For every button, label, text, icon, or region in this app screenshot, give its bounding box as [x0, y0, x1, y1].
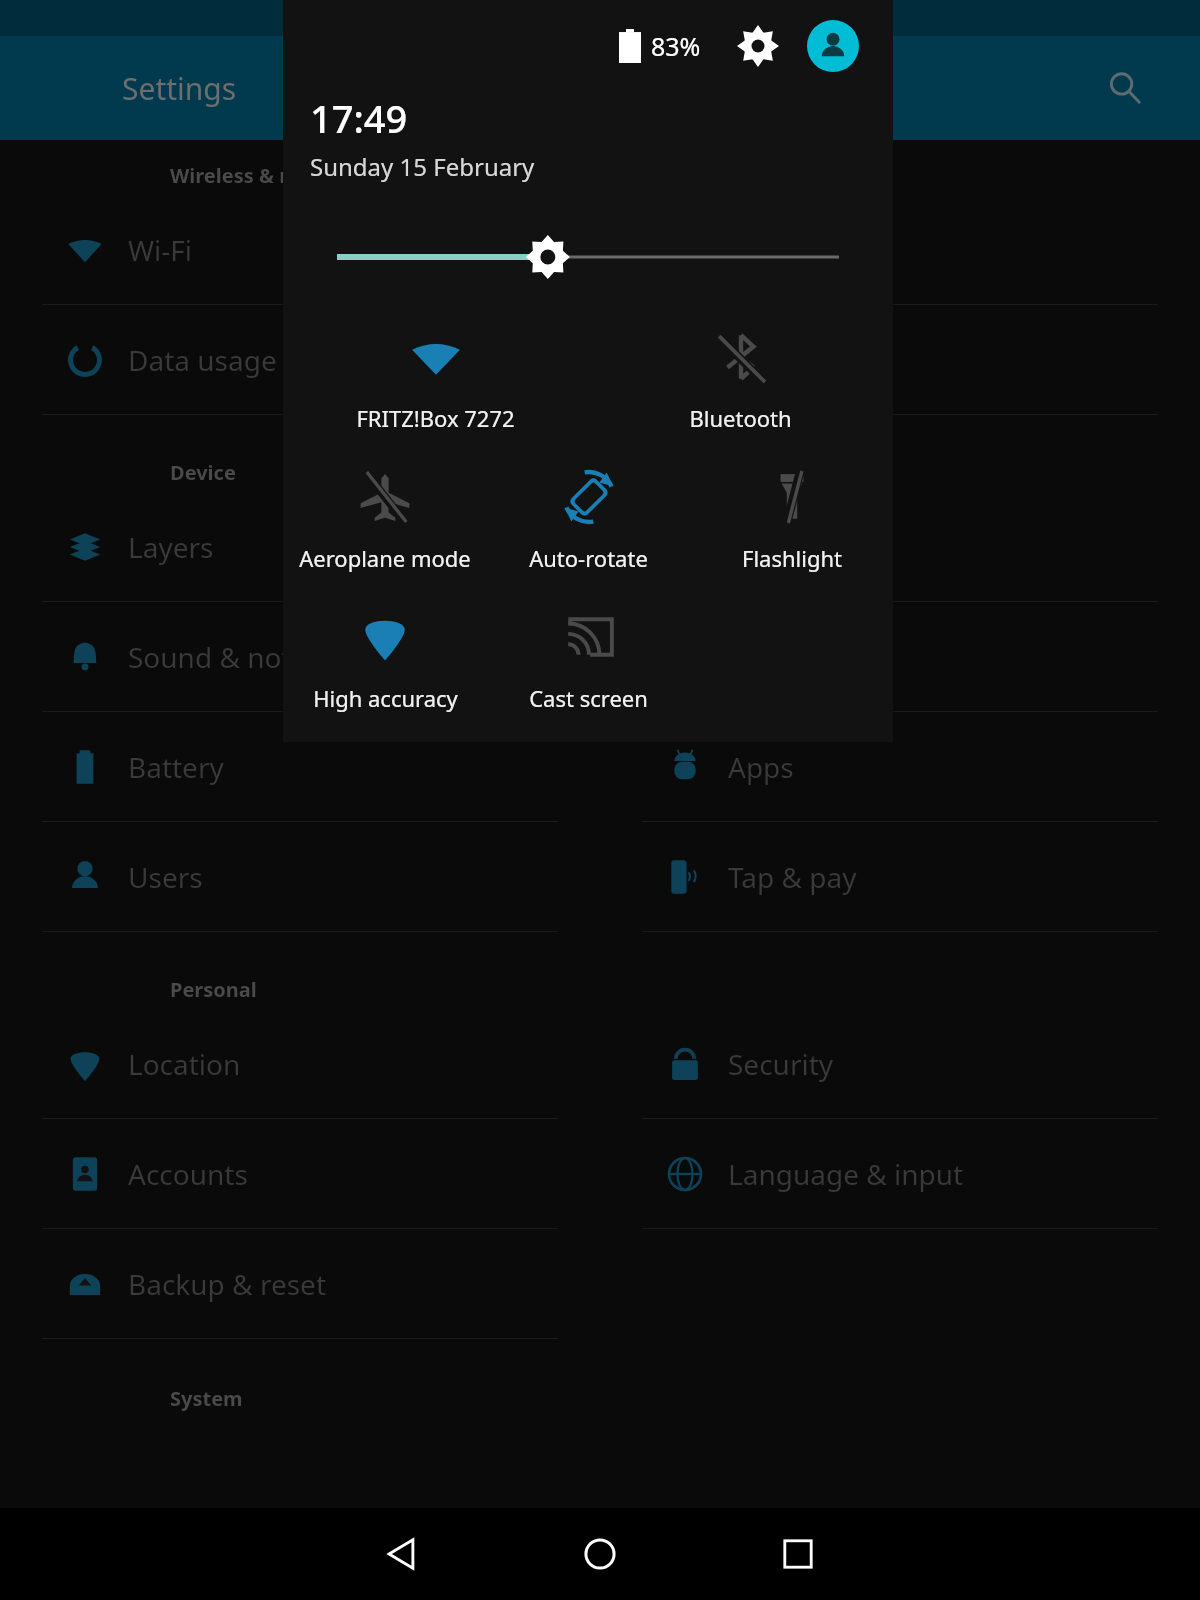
staticText: Display [728, 528, 824, 566]
staticText: 17:49 [310, 92, 408, 144]
button[interactable]: Flashlight [690, 449, 893, 589]
button[interactable]: Tap & pay [642, 822, 1158, 932]
button[interactable]: Battery [42, 712, 558, 822]
staticText: Language & input [728, 1155, 964, 1193]
button[interactable]: Display [642, 492, 1158, 602]
button[interactable]: Bluetooth [588, 309, 893, 449]
staticText: System [170, 1385, 243, 1412]
staticText: Security [728, 1045, 834, 1083]
button[interactable]: Auto-rotate [487, 449, 690, 589]
staticText: More [728, 341, 798, 379]
button[interactable]: Cast screen [487, 589, 690, 729]
button[interactable]: Aeroplane mode [283, 449, 487, 589]
staticText: Layers [128, 528, 214, 566]
staticText: Wi-Fi [128, 231, 193, 269]
button[interactable]: Brightness [283, 229, 893, 285]
staticText: 83% [651, 29, 701, 63]
staticText: Battery [128, 748, 224, 786]
staticText: Device [170, 459, 236, 486]
staticText: Location [128, 1045, 241, 1083]
button[interactable]: Sound & notification [42, 602, 558, 712]
staticText: Flashlight [742, 543, 842, 573]
button[interactable]: Search [1096, 59, 1154, 117]
button[interactable]: Data usage [42, 305, 558, 415]
button[interactable]: Security [642, 1009, 1158, 1119]
staticText: FRITZ!Box 7272 [356, 403, 515, 433]
button[interactable]: High accuracy [283, 589, 487, 729]
staticText: Sound & notification [128, 638, 397, 676]
button[interactable]: Language & input [642, 1119, 1158, 1229]
button[interactable]: Settings [731, 19, 785, 73]
button[interactable]: Home [545, 1508, 655, 1600]
button[interactable]: Backup & reset [42, 1229, 558, 1339]
button[interactable]: More [642, 305, 1158, 415]
button[interactable]: Back [347, 1508, 457, 1600]
staticText: Personal [170, 976, 257, 1003]
button[interactable]: Location [42, 1009, 558, 1119]
staticText: Settings [122, 68, 237, 109]
staticText: Auto-rotate [529, 543, 648, 573]
button[interactable]: Recent apps [743, 1508, 853, 1600]
staticText: Backup & reset [128, 1265, 326, 1303]
staticText: Cast screen [529, 683, 648, 713]
staticText: Wireless & networks [170, 162, 374, 189]
staticText: Sunday 15 February [310, 150, 535, 183]
button[interactable]: Layers [42, 492, 558, 602]
button[interactable]: Accounts [42, 1119, 558, 1229]
button[interactable]: User profile [807, 20, 859, 72]
button[interactable]: Users [42, 822, 558, 932]
staticText: Accounts [128, 1155, 248, 1193]
staticText: Bluetooth [689, 403, 792, 433]
button[interactable]: Bluetooth [642, 195, 1158, 305]
button[interactable]: Storage [642, 602, 1158, 712]
staticText: Bluetooth [728, 231, 858, 269]
button[interactable]: Apps [642, 712, 1158, 822]
button[interactable]: FRITZ!Box 7272 [283, 309, 588, 449]
staticText: Data usage [128, 341, 277, 379]
staticText: High accuracy [313, 683, 458, 713]
staticText: Tap & pay [728, 858, 857, 896]
staticText: Apps [728, 748, 794, 786]
staticText: Aeroplane mode [299, 543, 471, 573]
staticText: Users [128, 858, 203, 896]
button[interactable]: Wi-Fi [42, 195, 558, 305]
